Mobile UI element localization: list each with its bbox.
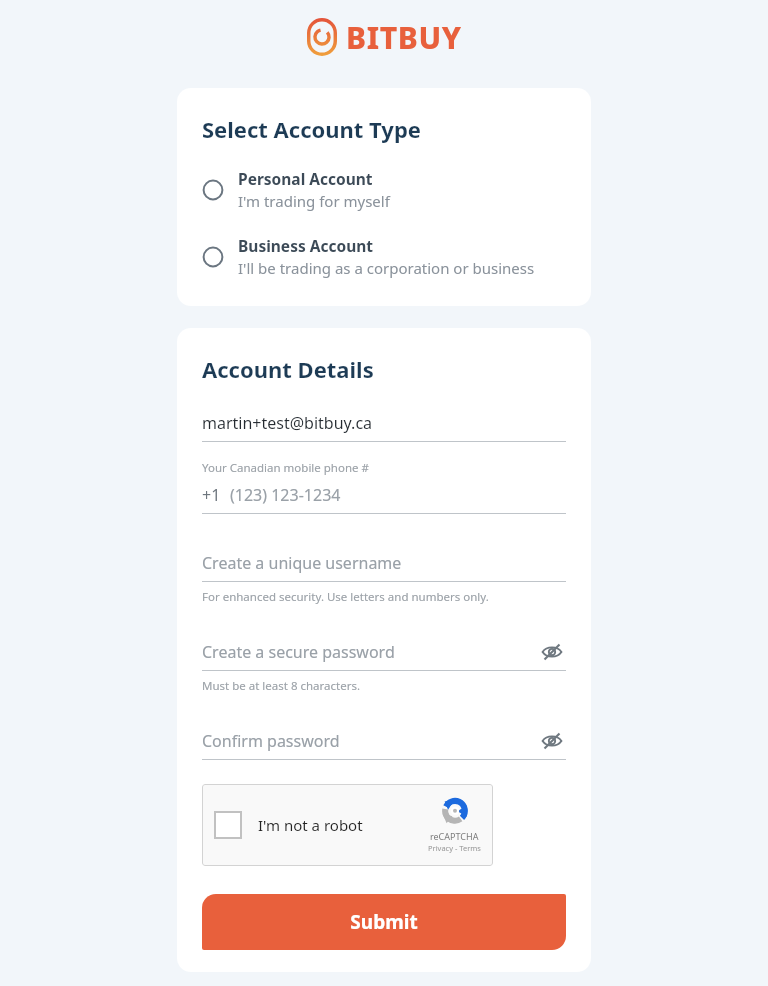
staticText: Business Account [238, 235, 374, 256]
button[interactable]: Create a unique username [202, 550, 566, 582]
button[interactable]: +1 [202, 482, 566, 514]
staticText: Must be at least 8 characters. [202, 678, 360, 694]
staticText: Create a unique username [202, 552, 402, 574]
button[interactable]: Create a secure password [202, 639, 566, 671]
staticText: Account Details [202, 354, 374, 384]
button[interactable]: Show confirm password [538, 728, 566, 754]
staticText: I'm trading for myself [238, 191, 390, 211]
button[interactable]: Show password [538, 639, 566, 665]
button[interactable]: I'm not a robot [202, 784, 493, 866]
button[interactable]: martin+test@bitbuy.ca [202, 410, 566, 442]
staticText: I'll be trading as a corporation or busi… [238, 258, 535, 278]
staticText: Confirm password [202, 730, 340, 752]
button[interactable]: Confirm password [202, 728, 566, 760]
staticText: Personal Account [238, 168, 373, 189]
staticText: Privacy - Terms [428, 843, 481, 853]
staticText: Your Canadian mobile phone # [202, 460, 369, 476]
staticText: reCAPTCHA [430, 830, 479, 842]
staticText: Submit [350, 909, 418, 935]
staticText: BITBUY [346, 17, 462, 58]
staticText: I'm not a robot [258, 815, 363, 835]
button[interactable]: Business Account [202, 233, 571, 280]
staticText: Select Account Type [202, 114, 421, 144]
button[interactable]: Submit [202, 894, 566, 950]
staticText: Create a secure password [202, 641, 395, 663]
staticText: +1 [202, 484, 221, 506]
staticText: martin+test@bitbuy.ca [202, 412, 373, 434]
button[interactable]: Personal Account [202, 166, 571, 213]
staticText: (123) 123-1234 [230, 484, 341, 506]
staticText: For enhanced security. Use letters and n… [202, 589, 489, 605]
